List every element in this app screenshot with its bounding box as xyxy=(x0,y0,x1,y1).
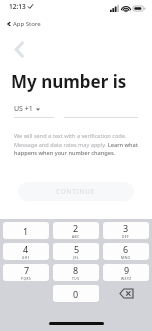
staticText: 1 xyxy=(23,225,29,237)
staticText: WXYZ xyxy=(121,277,132,281)
button[interactable]: App Store xyxy=(5,20,43,28)
staticText: CONTINUE xyxy=(56,187,96,196)
staticText: MNO xyxy=(121,256,131,260)
button[interactable]: 6 xyxy=(103,243,149,260)
staticText: App Store xyxy=(13,20,41,28)
button[interactable] xyxy=(64,104,138,118)
staticText: 5 xyxy=(74,243,80,255)
button[interactable]: 2 xyxy=(53,222,99,239)
staticText: 7 xyxy=(24,264,30,276)
staticText: GHI xyxy=(22,256,30,260)
staticText: 3 xyxy=(123,222,129,234)
staticText: JKL xyxy=(73,256,80,260)
staticText: My number is xyxy=(11,70,127,93)
button[interactable]: 7 xyxy=(3,264,49,281)
button[interactable]: CONTINUE xyxy=(18,182,134,201)
staticText: 9 xyxy=(124,264,130,276)
button[interactable]: 0 xyxy=(53,285,99,302)
staticText: TUV xyxy=(72,277,80,281)
button[interactable]: 9 xyxy=(103,264,149,281)
button[interactable]: 1 xyxy=(3,222,49,239)
staticText: 4 xyxy=(23,243,29,255)
staticText: 12:13 xyxy=(9,2,26,11)
button[interactable]: Delete xyxy=(103,285,149,302)
staticText: PQRS xyxy=(21,277,32,281)
staticText: 2 xyxy=(73,222,79,234)
staticText: DEF xyxy=(122,235,130,239)
button[interactable]: 4 xyxy=(3,243,49,260)
staticText: ABC xyxy=(72,235,80,239)
button[interactable]: 3 xyxy=(103,222,149,239)
button[interactable]: 8 xyxy=(53,264,99,281)
button[interactable]: Back xyxy=(8,38,30,60)
staticText: 8 xyxy=(73,264,79,276)
staticText: 6 xyxy=(123,243,129,255)
staticText: We will send a text with a verification … xyxy=(14,132,140,156)
staticText: US +1 xyxy=(14,104,33,114)
button[interactable]: US +1 xyxy=(14,104,54,118)
button[interactable]: 5 xyxy=(53,243,99,260)
staticText: 0 xyxy=(73,288,79,300)
